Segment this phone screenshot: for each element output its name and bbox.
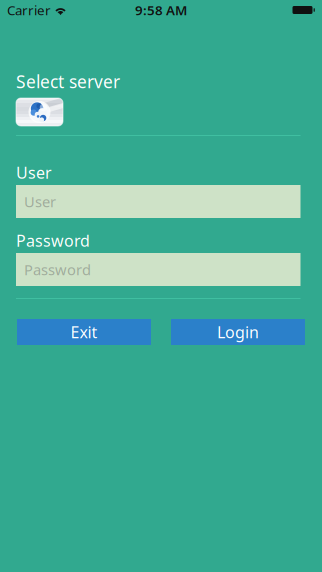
button[interactable]: Login [171,319,305,345]
button[interactable]: Password [16,253,300,286]
staticText: Password [16,230,90,251]
staticText: Password [24,260,91,279]
staticText: User [24,192,56,211]
button[interactable]: Exit [17,319,151,345]
button[interactable]: Select server [16,98,63,126]
button[interactable]: User [16,185,300,218]
staticText: Login [217,321,259,343]
staticText: Carrier [7,1,51,19]
staticText: 9:58 AM [135,1,187,19]
staticText: Exit [70,321,97,343]
staticText: User [16,162,52,183]
staticText: Select server [16,70,120,93]
